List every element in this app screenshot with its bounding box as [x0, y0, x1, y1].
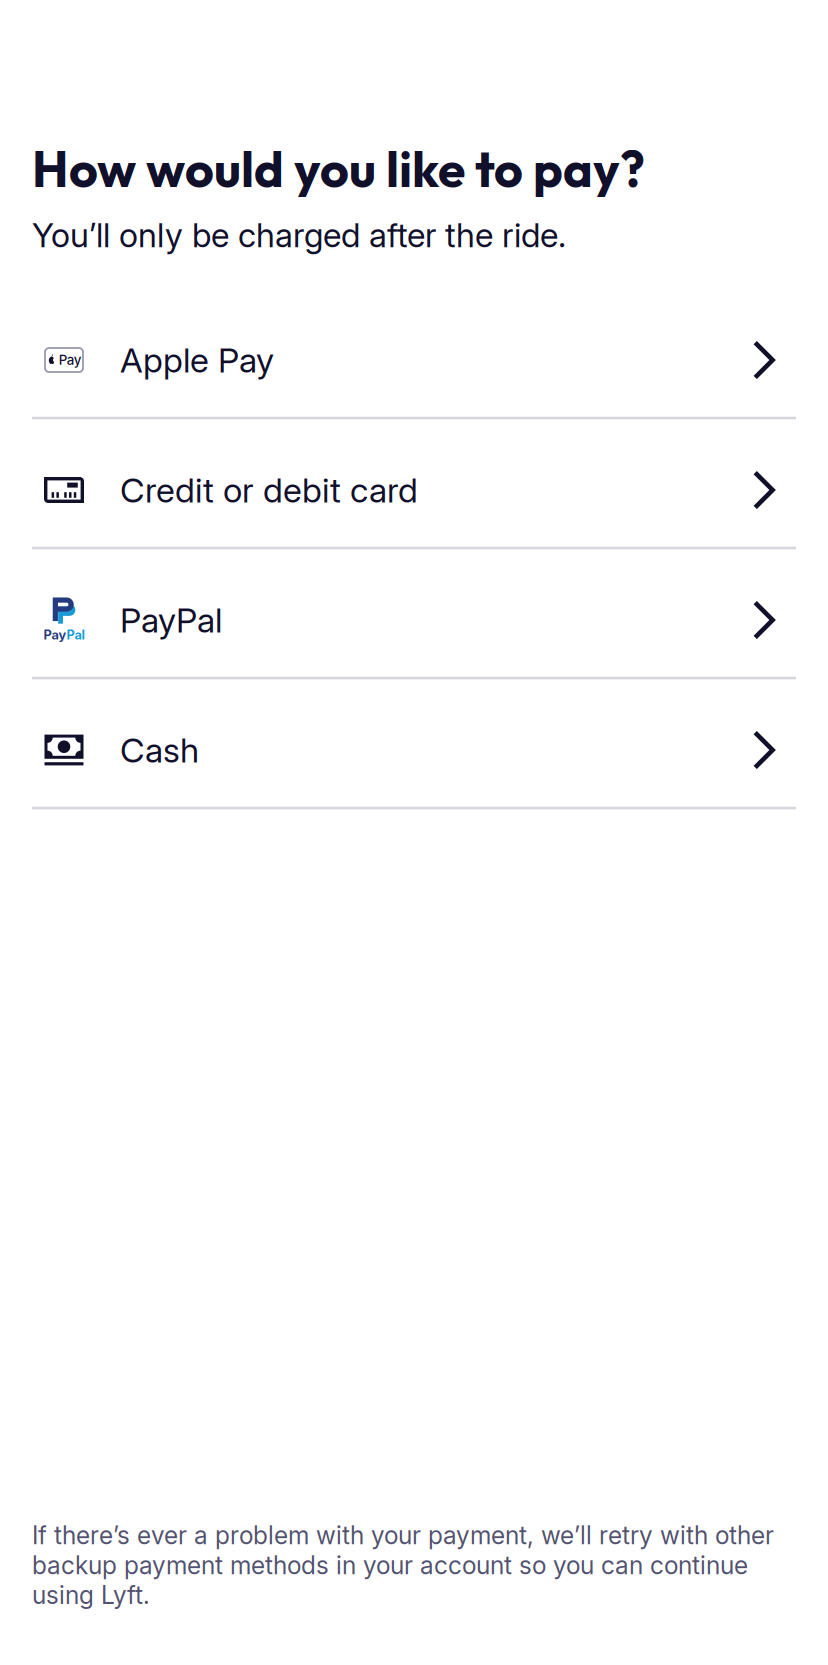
button[interactable]: Cash: [0, 679, 828, 809]
staticText: Pay: [59, 352, 82, 368]
staticText: Pal: [66, 627, 84, 643]
staticText: Credit or debit card: [120, 469, 418, 511]
button[interactable]: Pay: [0, 549, 828, 679]
staticText: How would you like to pay?: [32, 137, 645, 200]
staticText: You’ll only be charged after the ride.: [32, 215, 566, 255]
staticText: If there’s ever a problem with your paym…: [32, 1520, 774, 1610]
staticText: Cash: [120, 729, 199, 771]
button[interactable]: Credit or debit card: [0, 419, 828, 549]
staticText: Apple Pay: [120, 339, 274, 381]
button[interactable]: Pay: [0, 289, 828, 419]
staticText: Pay: [43, 627, 66, 643]
staticText: PayPal: [120, 599, 222, 641]
